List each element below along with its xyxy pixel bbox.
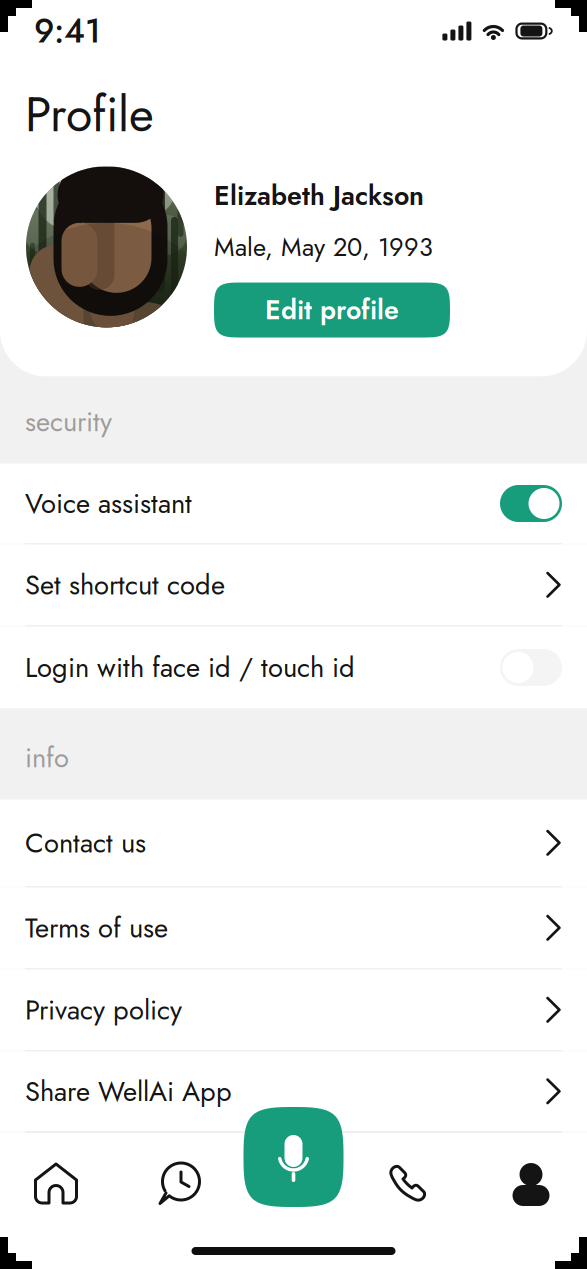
staticText: Set shortcut code (25, 565, 225, 605)
button[interactable]: Set shortcut code (0, 544, 587, 625)
button[interactable]: Calls (345, 1146, 469, 1220)
staticText: Elizabeth Jackson (214, 176, 424, 215)
staticText: Login with face id / touch id (25, 648, 355, 687)
button[interactable]: Profile (469, 1146, 587, 1220)
button[interactable]: Privacy policy (0, 969, 587, 1050)
button[interactable]: Terms of use (0, 887, 587, 968)
staticText: Profile (25, 80, 154, 149)
button[interactable]: Contact us (0, 799, 587, 886)
button[interactable]: Voice assistant (243, 1107, 343, 1207)
staticText: 9:41 (34, 7, 101, 55)
staticText: info (25, 738, 69, 777)
staticText: Edit profile (265, 291, 399, 329)
staticText: Male, May 20, 1993 (214, 229, 433, 265)
staticText: Privacy policy (25, 990, 182, 1030)
button[interactable]: Edit profile (214, 282, 450, 337)
button[interactable]: Login with face id / touch id (0, 626, 587, 708)
staticText: Terms of use (25, 908, 168, 948)
button[interactable]: Share WellAi App (0, 1051, 587, 1131)
staticText: Voice assistant (25, 484, 192, 523)
button[interactable]: Voice assistant (0, 463, 587, 543)
staticText: security (25, 402, 112, 441)
button[interactable]: Home (0, 1146, 118, 1220)
staticText: Share WellAi App (25, 1072, 232, 1111)
staticText: Contact us (25, 823, 146, 863)
button[interactable]: History (118, 1146, 242, 1220)
